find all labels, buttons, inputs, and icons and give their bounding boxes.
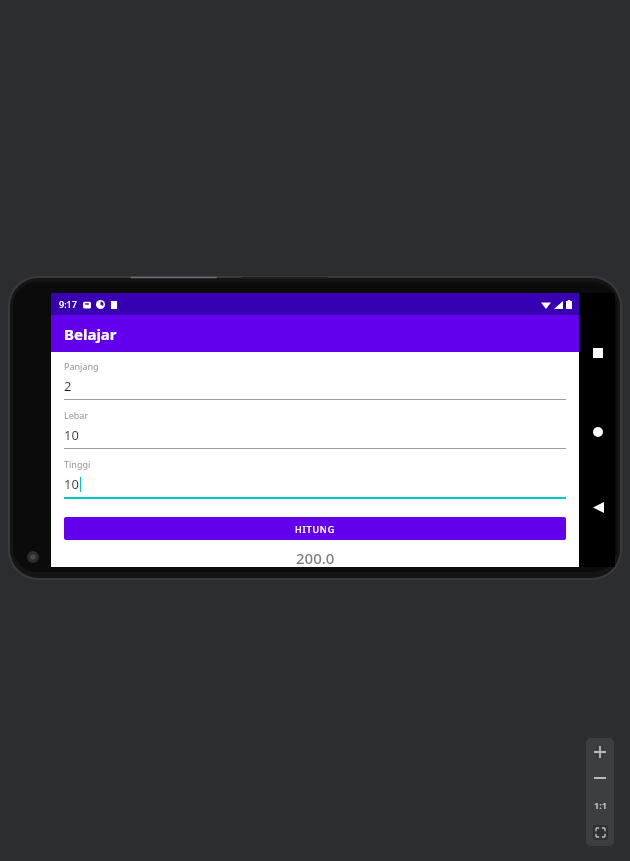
button[interactable]: Zoom out	[586, 765, 614, 791]
staticText: Panjang	[64, 360, 99, 372]
staticText: HITUNG	[295, 523, 336, 535]
staticText: 1:1	[594, 799, 607, 811]
staticText: Belajar	[64, 324, 117, 344]
button[interactable]: Fit to screen	[586, 818, 614, 846]
staticText: 10	[64, 426, 79, 444]
staticText: 9:17	[59, 298, 77, 310]
staticText: Lebar	[64, 409, 89, 421]
button[interactable]: Home	[591, 425, 605, 439]
button[interactable]: Overview	[591, 346, 605, 360]
button[interactable]: HITUNG	[64, 517, 566, 540]
staticText: 10	[64, 475, 79, 493]
staticText: Tinggi	[64, 458, 91, 470]
button[interactable]: Tinggi	[64, 458, 566, 499]
staticText: 200.0	[296, 548, 335, 567]
button[interactable]: Back	[591, 500, 605, 514]
button[interactable]: Zoom in	[586, 738, 614, 765]
button[interactable]: 1:1	[586, 791, 614, 818]
button[interactable]: Panjang	[64, 360, 566, 400]
button[interactable]: Lebar	[64, 409, 566, 449]
staticText: 2	[64, 377, 72, 395]
